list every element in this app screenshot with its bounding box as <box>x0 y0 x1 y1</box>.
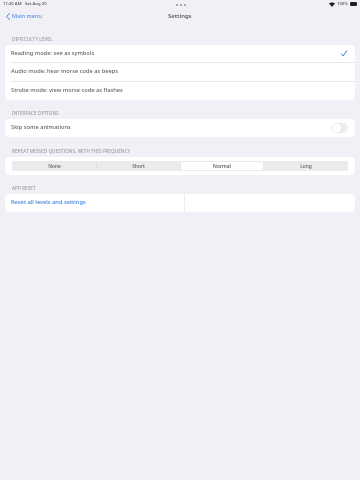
staticText: None <box>48 163 61 170</box>
staticText: Sat Aug 20 <box>25 1 47 7</box>
staticText: DIFFICULTY LEVEL <box>12 36 53 42</box>
staticText: Main menu <box>12 12 42 20</box>
staticText: Settings <box>168 12 192 20</box>
button[interactable]: Strobe mode: view morse code as flashes <box>5 82 355 100</box>
staticText: Normal <box>213 163 231 170</box>
button[interactable]: Long <box>265 162 347 170</box>
staticText: Strobe mode: view morse code as flashes <box>11 86 123 94</box>
staticText: REPEAT MISSED QUESTIONS, WITH THIS FREQU… <box>12 148 131 154</box>
button[interactable]: Reading mode: see as symbols <box>5 45 355 62</box>
button[interactable]: Normal <box>181 162 263 170</box>
staticText: Reset all levels and settings <box>11 198 86 206</box>
staticText: Short <box>132 163 145 170</box>
button[interactable]: Main menu <box>3 10 46 22</box>
staticText: 100% <box>337 1 348 7</box>
button[interactable]: Skip some animations <box>5 119 355 137</box>
button[interactable]: None <box>13 162 95 170</box>
staticText: Skip some animations <box>11 123 71 131</box>
staticText: APP RESET <box>12 185 36 191</box>
other: Selected <box>341 50 347 57</box>
other: Skip some animations toggle <box>332 123 348 133</box>
button[interactable]: Audio mode: hear morse code as beeps <box>5 63 355 81</box>
staticText: Audio mode: hear morse code as beeps <box>11 67 119 75</box>
button[interactable]: Reset all levels and settings <box>5 194 355 212</box>
staticText: Long <box>300 163 312 170</box>
staticText: 11:20 AM <box>3 1 22 7</box>
staticText: Reading mode: see as symbols <box>11 49 95 57</box>
staticText: INTERFACE OPTIONS <box>12 110 59 116</box>
button[interactable]: Short <box>97 162 179 170</box>
